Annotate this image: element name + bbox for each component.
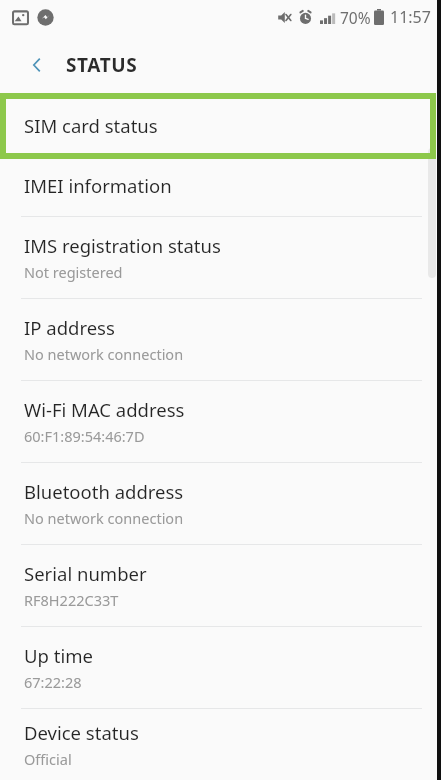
staticText: IMS registration status [24,233,221,258]
staticText: 60:F1:89:54:46:7D [24,426,145,446]
staticText: Official [24,749,72,769]
staticText: 11:57 [390,6,431,28]
staticText: Up time [24,643,93,668]
button[interactable]: Device status [0,709,441,780]
staticText: Bluetooth address [24,479,184,504]
button[interactable]: IMS registration status [0,217,441,299]
staticText: IMEI information [24,173,172,198]
staticText: Serial number [24,561,147,586]
button[interactable]: IMEI information [0,155,441,217]
button[interactable]: Back [14,42,60,88]
staticText: IP address [24,315,115,340]
staticText: No network connection [24,344,184,364]
staticText: Wi-Fi MAC address [24,397,185,422]
button[interactable]: Serial number [0,545,441,627]
staticText: Device status [24,720,139,745]
button[interactable]: Up time [0,627,441,709]
staticText: SIM card status [24,113,158,138]
staticText: 67:22:28 [24,672,82,692]
button[interactable]: SIM card status [0,96,441,155]
button[interactable]: Bluetooth address [0,463,441,545]
staticText: STATUS [66,52,138,78]
staticText: No network connection [24,508,184,528]
staticText: Not registered [24,262,123,282]
staticText: RF8H222C33T [24,590,119,610]
button[interactable]: Wi-Fi MAC address [0,381,441,463]
staticText: 70% [340,7,371,28]
button[interactable]: IP address [0,299,441,381]
